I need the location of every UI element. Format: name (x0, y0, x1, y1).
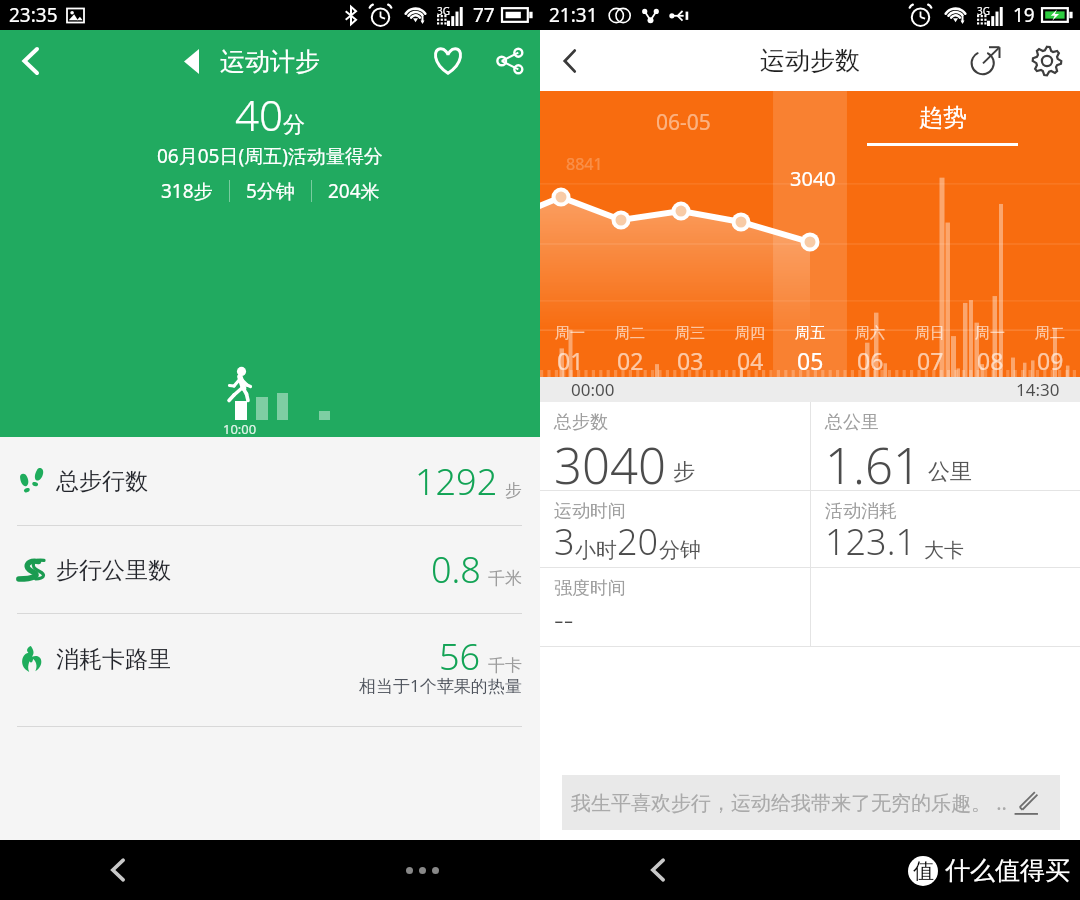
staticText: 周日 (915, 324, 945, 343)
button[interactable]: Favourite (417, 30, 479, 92)
staticText: 步 (673, 458, 695, 486)
staticText: 09 (1037, 345, 1064, 376)
staticText: 1.61 (825, 432, 921, 490)
staticText: 运动时间 (554, 500, 626, 523)
staticText: 强度时间 (554, 577, 626, 600)
staticText: 什么值得买 (945, 855, 1070, 886)
button[interactable]: Share (958, 33, 1014, 89)
staticText: 3G (977, 4, 990, 18)
staticText: 06-05 (656, 108, 711, 137)
staticText: 05 (797, 345, 824, 376)
staticText: 周五 (795, 324, 825, 343)
staticText: 周二 (615, 324, 645, 343)
staticText: 运动计步 (220, 46, 320, 77)
button[interactable]: 强度时间 (540, 568, 810, 646)
staticText: 06 (857, 345, 884, 376)
staticText: 204米 (328, 178, 380, 204)
staticText: 08 (977, 345, 1004, 376)
staticText: 公里 (928, 458, 972, 486)
staticText: 3040 (554, 432, 666, 490)
staticText: 3 (554, 517, 575, 566)
staticText: 步 (505, 480, 522, 501)
staticText: 大卡 (924, 538, 964, 563)
staticText: 周四 (735, 324, 765, 343)
staticText: 1292 (415, 457, 498, 506)
staticText: 14:30 (1016, 378, 1060, 401)
button[interactable]: 步行公里数 (0, 526, 540, 613)
staticText: 23:35 (9, 2, 58, 28)
button[interactable]: 消耗卡路里 (0, 614, 540, 726)
button[interactable]: More options (399, 847, 445, 893)
button[interactable]: 活动消耗 (811, 491, 1080, 567)
staticText: 0.8 (431, 545, 481, 594)
staticText: 值 (913, 858, 934, 884)
staticText: 活动消耗 (825, 500, 897, 523)
button[interactable]: 运动时间 (540, 491, 810, 567)
staticText: 3G (437, 4, 450, 18)
staticText: 周二 (1035, 324, 1065, 343)
staticText: -- (554, 598, 574, 639)
staticText: 千卡 (488, 655, 522, 676)
staticText: 相当于1个苹果的热量 (359, 674, 522, 697)
staticText: 步行公里数 (56, 556, 171, 585)
staticText: 02 (617, 345, 644, 376)
staticText: 总步数 (554, 411, 608, 434)
staticText: 20 (617, 517, 659, 566)
staticText: 19 (1013, 2, 1035, 28)
button[interactable]: 总步行数 (0, 437, 540, 525)
button[interactable]: 总公里 (811, 402, 1080, 490)
staticText: 总步行数 (56, 467, 148, 496)
button[interactable]: 我生平喜欢步行，运动给我带来了无穷的乐趣。 .. (562, 775, 1060, 830)
staticText: 77 (473, 2, 495, 28)
staticText: 123.1 (825, 517, 917, 566)
staticText: 318步 (161, 178, 213, 204)
staticText: 04 (737, 345, 764, 376)
button[interactable]: Back (95, 847, 141, 893)
staticText: 06月05日(周五)活动量得分 (157, 143, 383, 169)
staticText: 总公里 (825, 411, 879, 434)
staticText: 周一 (975, 324, 1005, 343)
staticText: 56 (439, 632, 481, 681)
staticText: 40 (235, 86, 283, 143)
staticText: 运动步数 (760, 45, 860, 76)
staticText: 8841 (566, 153, 603, 175)
staticText: 我生平喜欢步行，运动给我带来了无穷的乐趣。 .. (571, 789, 1007, 816)
button[interactable]: Back (635, 847, 681, 893)
staticText: 21:31 (549, 2, 598, 28)
staticText: 周六 (855, 324, 885, 343)
staticText: 5分钟 (246, 178, 295, 204)
button[interactable]: 总步数 (540, 402, 810, 490)
button[interactable]: Share (479, 30, 540, 92)
staticText: 千米 (488, 568, 522, 589)
staticText: 01 (557, 345, 584, 376)
staticText: 00:00 (571, 378, 615, 401)
staticText: 分 (283, 111, 305, 139)
staticText: 03 (677, 345, 704, 376)
staticText: 消耗卡路里 (56, 645, 171, 674)
staticText: 10:00 (223, 420, 257, 437)
staticText: 07 (917, 345, 944, 376)
button[interactable]: Back (540, 30, 600, 91)
button[interactable]: Edit (1012, 789, 1040, 817)
staticText: 小时 (575, 537, 617, 563)
staticText: 周三 (675, 324, 705, 343)
button[interactable]: 趋势 (867, 103, 1018, 146)
staticText: 趋势 (919, 103, 967, 133)
staticText: 分钟 (659, 537, 701, 563)
staticText: 周一 (555, 324, 585, 343)
button[interactable]: Settings (1014, 30, 1080, 91)
staticText: 3040 (790, 165, 836, 192)
button[interactable]: Back (0, 30, 62, 92)
